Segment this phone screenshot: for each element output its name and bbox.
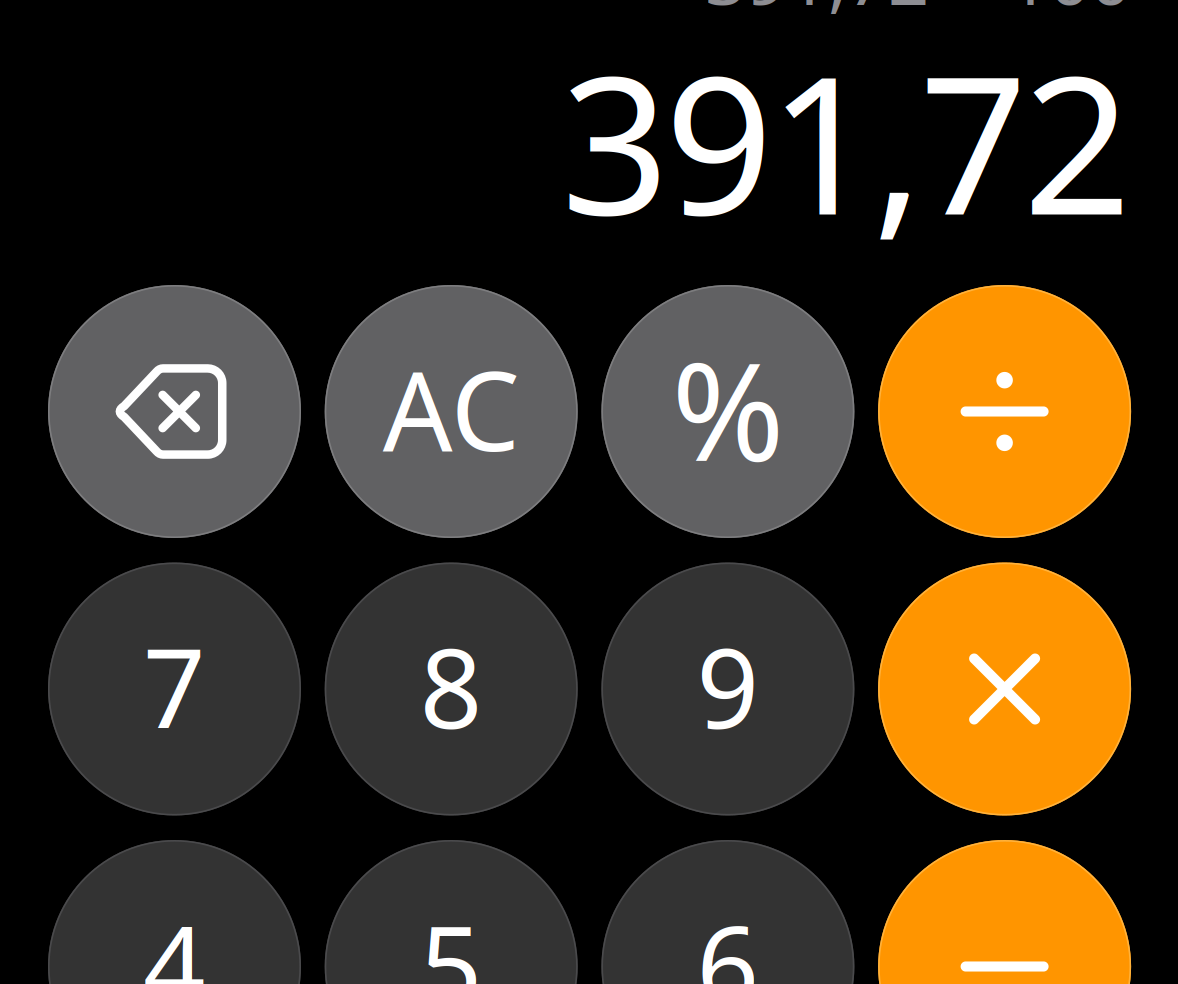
staticText: 7 bbox=[143, 613, 206, 759]
staticText: 9 bbox=[696, 613, 759, 759]
staticText: 4 bbox=[143, 891, 206, 984]
button[interactable]: Subtract bbox=[878, 840, 1131, 984]
button[interactable]: Delete bbox=[48, 285, 301, 538]
staticText: % bbox=[671, 318, 784, 499]
staticText: 5 bbox=[420, 891, 483, 984]
button[interactable]: 8 bbox=[325, 562, 578, 815]
button[interactable]: Divide bbox=[878, 285, 1131, 538]
button[interactable]: 6 bbox=[601, 840, 854, 984]
staticText: 8 bbox=[420, 613, 483, 759]
staticText: 6 bbox=[696, 891, 759, 984]
staticText: 391,72 bbox=[561, 15, 1131, 267]
button[interactable]: 4 bbox=[48, 840, 301, 984]
button[interactable]: 5 bbox=[325, 840, 578, 984]
button[interactable]: 7 bbox=[48, 562, 301, 815]
staticText: AC bbox=[383, 336, 520, 481]
staticText: 391,72 − 100 bbox=[705, 0, 1131, 25]
button[interactable]: 9 bbox=[601, 562, 854, 815]
button[interactable]: % bbox=[601, 285, 854, 538]
button[interactable]: AC bbox=[325, 285, 578, 538]
button[interactable]: Multiply bbox=[878, 562, 1131, 815]
